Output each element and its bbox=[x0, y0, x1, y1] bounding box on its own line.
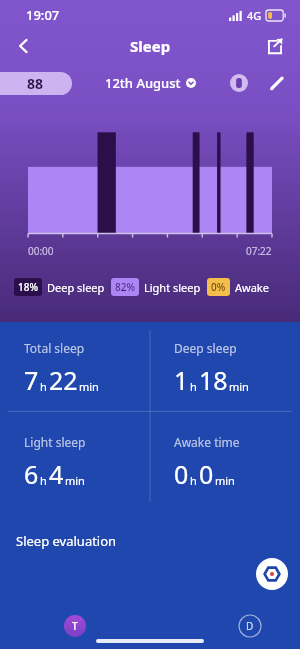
staticText: 0 bbox=[199, 457, 214, 491]
button[interactable]: Total sleep bbox=[0, 322, 150, 416]
staticText: 4G bbox=[247, 8, 262, 23]
button[interactable]: Share bbox=[258, 30, 292, 62]
staticText: min bbox=[215, 473, 235, 488]
staticText: 12th August bbox=[105, 74, 181, 92]
staticText: Sleep evaluation bbox=[16, 532, 117, 550]
staticText: 19:07 bbox=[26, 6, 60, 24]
staticText: min bbox=[79, 379, 99, 394]
staticText: 6 bbox=[24, 457, 39, 491]
staticText: Deep sleep bbox=[47, 280, 105, 295]
button[interactable]: T bbox=[64, 615, 86, 637]
staticText: h bbox=[40, 473, 47, 488]
staticText: D bbox=[246, 619, 254, 633]
staticText: Awake time bbox=[174, 434, 240, 450]
staticText: 1 bbox=[174, 363, 189, 397]
staticText: Sleep bbox=[130, 36, 171, 56]
button[interactable]: Deep sleep bbox=[150, 322, 300, 416]
staticText: h bbox=[40, 379, 47, 394]
staticText: 18% bbox=[18, 280, 38, 294]
staticText: Light sleep bbox=[144, 280, 201, 295]
staticText: h bbox=[190, 379, 197, 394]
staticText: 18 bbox=[199, 363, 228, 397]
staticText: Awake bbox=[235, 280, 269, 295]
staticText: Deep sleep bbox=[174, 340, 237, 356]
staticText: 88 bbox=[27, 74, 44, 93]
button[interactable]: Watch device bbox=[226, 70, 252, 96]
staticText: Total sleep bbox=[24, 340, 85, 356]
button[interactable]: Back bbox=[6, 30, 42, 62]
staticText: 22 bbox=[49, 363, 78, 397]
button[interactable]: Edit bbox=[264, 70, 290, 96]
staticText: 0% bbox=[211, 280, 226, 294]
button[interactable]: Light sleep bbox=[0, 416, 150, 510]
staticText: Light sleep bbox=[24, 434, 86, 450]
button[interactable]: Awake time bbox=[150, 416, 300, 510]
button[interactable]: D bbox=[238, 614, 262, 638]
staticText: 4 bbox=[49, 457, 64, 491]
staticText: 82% bbox=[115, 280, 135, 294]
staticText: 07:22 bbox=[246, 244, 272, 258]
button[interactable]: 12th August bbox=[105, 74, 196, 92]
staticText: min bbox=[65, 473, 85, 488]
staticText: 7 bbox=[24, 363, 39, 397]
staticText: T bbox=[72, 619, 78, 633]
button[interactable]: Assistant bbox=[256, 558, 288, 590]
staticText: 0 bbox=[174, 457, 189, 491]
button[interactable]: 88 bbox=[0, 72, 72, 95]
staticText: min bbox=[229, 379, 249, 394]
staticText: 00:00 bbox=[28, 244, 54, 258]
staticText: h bbox=[190, 473, 197, 488]
